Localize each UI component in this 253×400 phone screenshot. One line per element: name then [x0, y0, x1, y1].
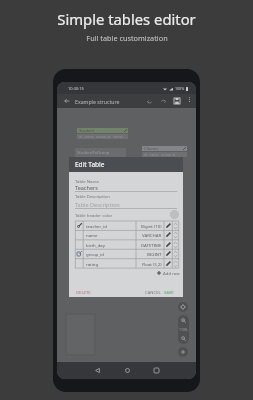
button[interactable]: Recent apps: [149, 363, 163, 377]
staticText: id name group_id rating: [79, 134, 123, 138]
button[interactable]: Save: [170, 94, 184, 108]
staticText: id name group_id rating: [144, 152, 187, 156]
button[interactable]: Redo: [156, 94, 170, 108]
button[interactable]: CANCEL: [145, 290, 161, 296]
button[interactable]: Zoom in: [178, 315, 189, 326]
button[interactable]: group_id: [75, 249, 179, 258]
button[interactable]: teacher_id: [75, 221, 179, 230]
button[interactable]: Reorder teacher_id: [172, 221, 179, 230]
button[interactable]: Edit group_id: [164, 249, 172, 258]
staticText: Table Description: [75, 201, 120, 208]
button[interactable]: Pick header color: [170, 210, 179, 219]
staticText: Table header color: [75, 212, 113, 218]
staticText: Bigint (10): [141, 223, 162, 229]
button[interactable]: Student: [77, 128, 128, 139]
button[interactable]: SAVE: [164, 290, 174, 296]
button[interactable]: Edit rating: [164, 259, 172, 268]
button[interactable]: Reorder name: [172, 230, 179, 239]
button[interactable]: Home: [120, 363, 134, 377]
staticText: SAVE: [164, 290, 174, 296]
staticText: Simple tables editor: [57, 9, 196, 29]
staticText: rating: [86, 261, 99, 267]
staticText: 10:30:15: [68, 86, 84, 91]
staticText: Teachers: [75, 184, 98, 191]
button[interactable]: Undo: [142, 94, 156, 108]
button[interactable]: name: [75, 230, 179, 239]
staticText: BIGINT: [147, 251, 162, 257]
button[interactable]: rating: [75, 259, 179, 268]
staticText: Float (3,2): [142, 261, 162, 267]
button[interactable]: Classes: [142, 146, 187, 157]
staticText: DATETIME: [141, 242, 162, 248]
button[interactable]: More options: [184, 94, 194, 104]
button[interactable]: Back: [90, 363, 104, 377]
button[interactable]: Reorder group_id: [172, 249, 179, 258]
button[interactable]: Reorder rating: [172, 259, 179, 268]
button[interactable]: birth_day: [75, 240, 179, 249]
staticText: Edit Table: [75, 160, 105, 169]
button[interactable]: Navigate up: [60, 94, 74, 108]
staticText: StudentToGroup: [77, 150, 110, 156]
staticText: Add row: [163, 270, 180, 276]
staticText: group_id: [86, 251, 104, 257]
staticText: DELETE: [76, 290, 91, 296]
staticText: name: [86, 232, 98, 238]
button[interactable]: Edit teacher_id: [164, 221, 172, 230]
button[interactable]: Zoom out: [178, 333, 189, 344]
button[interactable]: StudentToGroup: [75, 148, 126, 157]
staticText: Full table customization: [86, 33, 168, 43]
button[interactable]: Add table: [178, 347, 188, 357]
button[interactable]: Center: [178, 302, 188, 312]
button[interactable]: DELETE: [76, 290, 91, 296]
staticText: Student: [79, 128, 95, 133]
staticText: Table Description: [75, 193, 110, 199]
button[interactable]: Edit name: [164, 230, 172, 239]
staticText: Table Name: [75, 178, 99, 184]
staticText: 110%: [179, 327, 188, 332]
staticText: Classes: [144, 146, 159, 151]
staticText: CANCEL: [145, 290, 161, 296]
staticText: Example structure: [75, 98, 120, 105]
button[interactable]: Add row: [157, 270, 180, 276]
staticText: teacher_id: [86, 223, 107, 229]
button[interactable]: Edit birth_day: [164, 240, 172, 249]
staticText: VARCHAR: [142, 232, 162, 238]
button[interactable]: Reorder birth_day: [172, 240, 179, 249]
staticText: birth_day: [86, 242, 105, 248]
staticText: 100%: [175, 86, 185, 91]
